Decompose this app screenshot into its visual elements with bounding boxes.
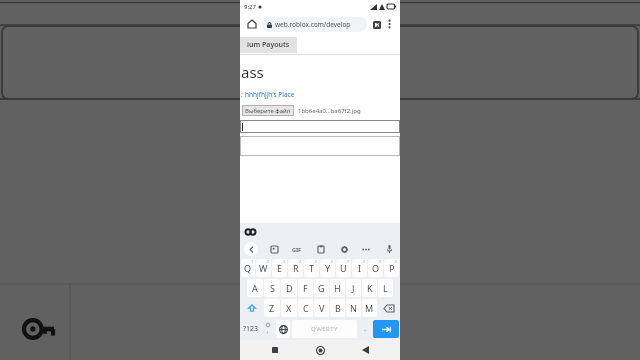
button[interactable]: QWERTY [292, 320, 357, 338]
button[interactable]: Выберите файл [242, 105, 294, 116]
button[interactable]: Glasses [244, 225, 257, 238]
staticText: ium Payouts [247, 40, 290, 50]
button[interactable]: Clipboard [314, 242, 328, 256]
staticText: GIF [292, 246, 302, 253]
staticText: 2 [376, 22, 379, 29]
staticText: Выберите файл [245, 107, 291, 115]
staticText: ass [241, 62, 264, 82]
staticText: , [267, 328, 269, 335]
staticText: 7 [347, 259, 350, 264]
button[interactable]: GIF [289, 241, 305, 257]
button[interactable]: Settings [337, 242, 351, 256]
button[interactable]: K [362, 279, 377, 297]
staticText: 9:27 [244, 3, 256, 11]
staticText: L [383, 282, 388, 294]
staticText: ?123 [243, 324, 259, 334]
staticText: A [252, 282, 258, 294]
staticText: 6 [331, 259, 334, 264]
button[interactable]: Emoji [262, 320, 274, 338]
button[interactable]: S [264, 279, 280, 297]
button[interactable]: E [272, 259, 287, 277]
button[interactable]: O [368, 259, 383, 277]
staticText: F [303, 282, 308, 294]
button[interactable]: More [359, 242, 373, 256]
staticText: U [340, 262, 347, 274]
button[interactable]: X [281, 299, 297, 317]
staticText: 0 [395, 259, 398, 264]
staticText: X [286, 302, 292, 314]
staticText: Z [269, 302, 275, 314]
staticText: T [309, 262, 315, 274]
staticText: web.roblox.com/develop [275, 20, 351, 29]
staticText: 3 [283, 259, 286, 264]
staticText: 2 [267, 259, 270, 264]
staticText: 9 [379, 259, 382, 264]
staticText: QWERTY [311, 325, 339, 333]
staticText: B [335, 302, 341, 314]
staticText: I [358, 262, 362, 274]
button[interactable]: . [359, 320, 371, 338]
button[interactable]: Q [241, 259, 255, 277]
button[interactable]: R [288, 259, 303, 277]
staticText: Y [325, 262, 331, 274]
button[interactable]: Z [264, 299, 280, 317]
button[interactable]: T [304, 259, 319, 277]
staticText: 1bb6e4a0...ba67f2.jpg [298, 107, 361, 115]
button[interactable]: Voice input [382, 242, 396, 256]
button[interactable]: B [330, 299, 345, 317]
staticText: : [241, 90, 245, 99]
button[interactable] [240, 136, 400, 156]
button[interactable]: Home [245, 17, 259, 31]
button[interactable]: Y [320, 259, 335, 277]
button[interactable]: Backspace [378, 299, 399, 317]
button[interactable]: U [336, 259, 351, 277]
button[interactable]: Home [310, 340, 330, 360]
button[interactable]: Next [373, 320, 399, 338]
staticText: S [270, 282, 275, 294]
staticText: G [318, 282, 325, 294]
button[interactable]: ium Payouts [240, 37, 297, 53]
staticText: N [350, 302, 357, 314]
button[interactable]: ?123 [241, 320, 260, 338]
button[interactable]: Shift [241, 299, 263, 317]
button[interactable]: Tabs [370, 18, 383, 31]
staticText: K [367, 282, 373, 294]
button[interactable]: Recents [265, 340, 285, 360]
button[interactable]: G [314, 279, 329, 297]
button[interactable]: F [298, 279, 313, 297]
button[interactable]: D [281, 279, 297, 297]
staticText: C [303, 302, 309, 314]
staticText: D [286, 282, 293, 294]
button[interactable]: Back [355, 340, 375, 360]
staticText: R [293, 262, 299, 274]
staticText: O [372, 262, 380, 274]
button[interactable]: N [346, 299, 361, 317]
button[interactable]: W [256, 259, 271, 277]
staticText: Q [244, 262, 252, 274]
button[interactable] [240, 120, 400, 133]
button[interactable]: P [384, 259, 399, 277]
button[interactable]: web.roblox.com/develop [262, 17, 367, 32]
button[interactable]: Change language [276, 320, 290, 338]
staticText: 5 [315, 259, 318, 264]
staticText: V [319, 302, 325, 314]
staticText: 1 [251, 259, 254, 264]
other: Password [22, 316, 56, 342]
staticText: 8 [363, 259, 366, 264]
button[interactable]: M [362, 299, 377, 317]
button[interactable]: Back [244, 242, 258, 256]
button[interactable]: hhhjfhjjh's Place [245, 90, 295, 99]
staticText: . [364, 324, 366, 334]
button[interactable]: A [247, 279, 263, 297]
button[interactable]: J [346, 279, 361, 297]
button[interactable]: Stickers [267, 242, 281, 256]
button[interactable]: I [352, 259, 367, 277]
staticText: E [277, 262, 283, 274]
button[interactable]: H [330, 279, 345, 297]
button[interactable]: V [314, 299, 329, 317]
staticText: W [259, 262, 268, 274]
button[interactable]: More options [383, 18, 395, 30]
button[interactable]: C [298, 299, 313, 317]
staticText: 4 [299, 259, 302, 264]
button[interactable]: L [378, 279, 393, 297]
